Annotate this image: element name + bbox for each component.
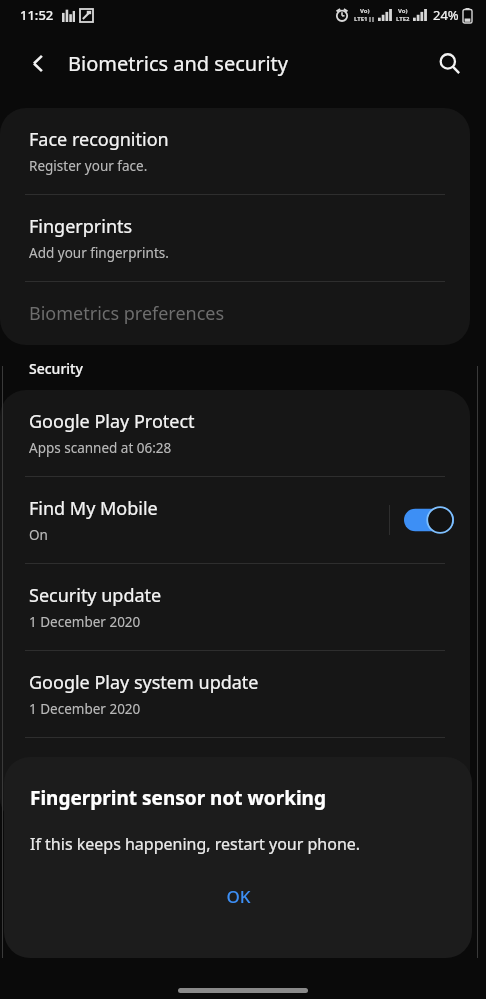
staticText: Add your fingerprints. bbox=[29, 244, 169, 262]
staticText: OK bbox=[226, 885, 251, 908]
staticText: Fingerprints bbox=[29, 214, 133, 239]
staticText: Vo) bbox=[360, 7, 370, 15]
staticText: Security update bbox=[29, 583, 162, 608]
button[interactable]: Back bbox=[16, 41, 60, 85]
staticText: Google Play system update bbox=[29, 670, 259, 695]
staticText: 1 December 2020 bbox=[29, 700, 141, 718]
staticText: Vo) bbox=[398, 7, 408, 15]
staticText: Biometrics and security bbox=[68, 50, 288, 77]
button[interactable]: Find My Mobile toggle, on bbox=[404, 506, 454, 534]
button[interactable]: Search bbox=[426, 40, 472, 86]
staticText: LTE2 bbox=[396, 15, 410, 23]
staticText: LTE1 bbox=[354, 15, 368, 23]
button[interactable]: Google Play system update bbox=[0, 651, 470, 737]
staticText: Fingerprint sensor not working bbox=[30, 785, 326, 811]
button[interactable]: OK bbox=[196, 877, 281, 916]
button[interactable]: Biometrics preferences bbox=[0, 282, 470, 345]
button[interactable]: Google Play Protect bbox=[0, 390, 470, 476]
staticText: If this keeps happening, restart your ph… bbox=[30, 833, 361, 855]
staticText: Biometrics preferences bbox=[29, 301, 225, 326]
staticText: Apps scanned at 06:28 bbox=[29, 439, 172, 457]
staticText: Register your face. bbox=[29, 157, 148, 175]
button[interactable]: Fingerprints bbox=[0, 195, 470, 281]
button[interactable]: Face recognition bbox=[0, 108, 470, 194]
button[interactable]: Find My Mobile bbox=[0, 477, 470, 563]
staticText: 24% bbox=[433, 6, 459, 24]
button[interactable]: Security update bbox=[0, 564, 470, 650]
staticText: Keep your personal files and apps safe a… bbox=[29, 787, 350, 805]
staticText: Face recognition bbox=[29, 127, 169, 152]
staticText: Security bbox=[29, 359, 83, 378]
staticText: 1 December 2020 bbox=[29, 613, 141, 631]
staticText: Google Play Protect bbox=[29, 409, 195, 434]
button[interactable]: Secure Folder bbox=[0, 738, 470, 824]
staticText: On bbox=[29, 526, 48, 544]
staticText: 11:52 bbox=[20, 6, 54, 24]
staticText: Find My Mobile bbox=[29, 496, 158, 521]
